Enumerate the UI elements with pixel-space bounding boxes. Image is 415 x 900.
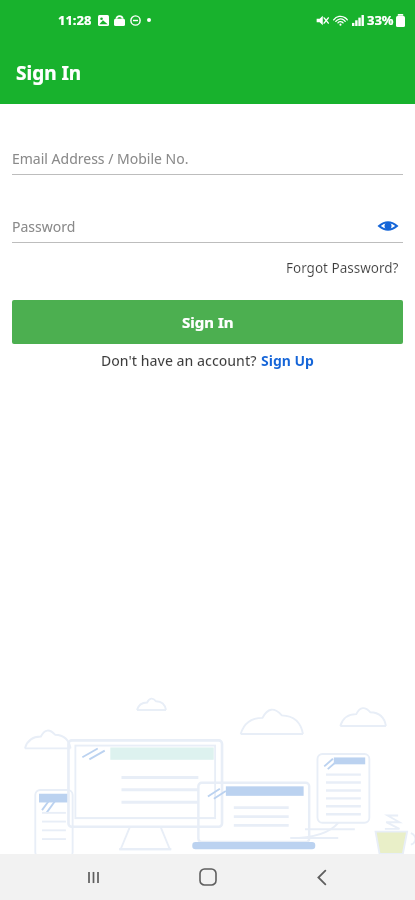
staticText: 33% — [367, 11, 394, 29]
staticText: Password — [12, 217, 76, 236]
button[interactable]: Sign In — [12, 300, 403, 344]
button[interactable]: Password — [12, 210, 403, 242]
staticText: Sign In — [182, 312, 234, 332]
button[interactable]: Show password — [373, 211, 403, 241]
button[interactable]: Back — [300, 855, 344, 899]
staticText: Don't have an account? — [101, 351, 261, 370]
button[interactable]: Forgot Password? — [282, 255, 403, 281]
staticText: Sign In — [16, 60, 82, 86]
staticText: Sign Up — [261, 351, 314, 370]
staticText: Forgot Password? — [286, 259, 399, 277]
button[interactable]: Email Address / Mobile No. — [12, 142, 403, 174]
button[interactable]: Sign Up — [261, 351, 314, 370]
staticText: Email Address / Mobile No. — [12, 149, 189, 168]
button[interactable]: Home — [186, 855, 230, 899]
staticText: 11:28 — [58, 11, 92, 29]
button[interactable]: Recent apps — [71, 855, 115, 899]
